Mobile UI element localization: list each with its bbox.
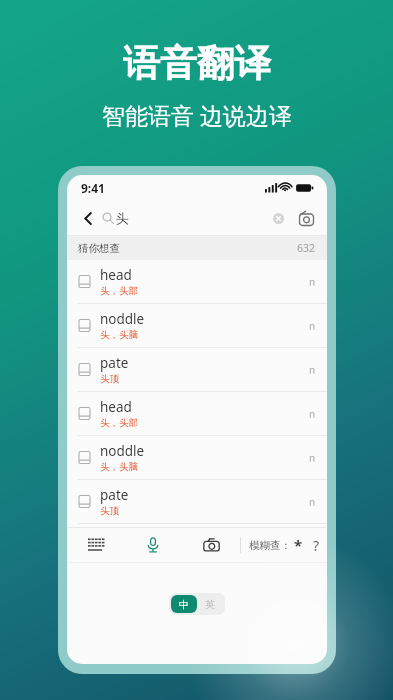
staticText: head bbox=[100, 398, 132, 416]
staticText: 中 bbox=[179, 598, 189, 611]
staticText: 语音翻译 bbox=[123, 40, 271, 87]
staticText: n bbox=[309, 275, 316, 289]
button[interactable]: Keyboard bbox=[67, 528, 124, 562]
staticText: 英 bbox=[205, 598, 215, 611]
staticText: 头，头脑 bbox=[100, 329, 138, 341]
button[interactable]: head bbox=[67, 392, 327, 436]
button[interactable]: head bbox=[67, 260, 327, 304]
staticText: n bbox=[309, 495, 316, 509]
button[interactable]: 英 bbox=[197, 595, 223, 613]
staticText: head bbox=[100, 266, 132, 284]
staticText: n bbox=[309, 319, 316, 333]
staticText: pate bbox=[100, 486, 129, 504]
staticText: * bbox=[294, 535, 303, 555]
button[interactable]: pate bbox=[67, 480, 327, 524]
staticText: 632 bbox=[297, 241, 316, 255]
staticText: 头，头部 bbox=[100, 417, 138, 429]
button[interactable]: Voice input bbox=[124, 528, 182, 562]
staticText: 头，头脑 bbox=[100, 461, 138, 473]
staticText: n bbox=[309, 451, 316, 465]
button[interactable]: Clear bbox=[268, 208, 288, 228]
staticText: noddle bbox=[100, 442, 145, 460]
staticText: 头顶 bbox=[100, 373, 119, 385]
staticText: noddle bbox=[100, 310, 145, 328]
staticText: 猜你想查 bbox=[78, 242, 120, 255]
button[interactable]: noddle bbox=[67, 436, 327, 480]
staticText: n bbox=[309, 407, 316, 421]
staticText: n bbox=[309, 363, 316, 377]
button[interactable]: 模糊查： bbox=[241, 528, 327, 562]
button[interactable]: 头 bbox=[102, 210, 268, 226]
button[interactable]: Back bbox=[77, 207, 99, 229]
staticText: pate bbox=[100, 354, 129, 372]
staticText: 头 bbox=[116, 210, 129, 226]
button[interactable]: Camera bbox=[182, 528, 240, 562]
button[interactable]: 中 bbox=[171, 595, 197, 613]
staticText: 智能语音 边说边译 bbox=[102, 99, 292, 130]
staticText: 9:41 bbox=[81, 180, 105, 196]
staticText: 模糊查： bbox=[249, 539, 291, 552]
staticText: ? bbox=[313, 536, 320, 555]
staticText: 头顶 bbox=[100, 505, 119, 517]
button[interactable]: noddle bbox=[67, 304, 327, 348]
button[interactable]: pate bbox=[67, 348, 327, 392]
staticText: 头，头部 bbox=[100, 285, 138, 297]
button[interactable]: Scan bbox=[295, 207, 317, 229]
